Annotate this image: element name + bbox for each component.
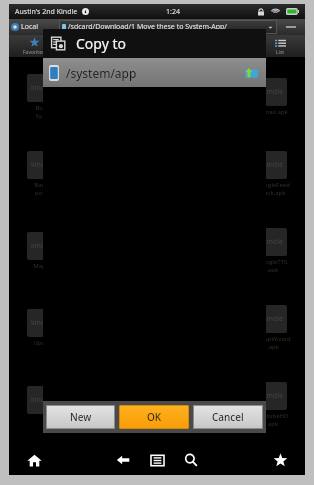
button[interactable]: kindle: [244, 59, 302, 135]
staticText: Copy to: [76, 34, 126, 53]
staticText: kindle: [31, 318, 51, 328]
button[interactable]: Back: [111, 448, 135, 472]
staticText: Maps: [33, 262, 49, 270]
button[interactable]: Minimize: [279, 21, 303, 33]
staticText: Cancel: [212, 410, 244, 424]
button[interactable]: Select: [59, 35, 109, 57]
button[interactable]: kindle: [12, 366, 70, 443]
button[interactable]: Favorites: [9, 35, 59, 57]
button[interactable]: kindle: [244, 212, 302, 289]
button[interactable]: Up one level: [240, 63, 260, 83]
staticText: kindle: [263, 160, 283, 170]
button[interactable]: kindle: [244, 366, 302, 443]
staticText: kindle: [205, 83, 225, 93]
button[interactable]: kindle: [12, 135, 70, 212]
staticText: kindle: [31, 241, 51, 251]
staticText: GoogleFeed back.apk: [256, 181, 290, 197]
staticText: Back po…: [34, 181, 48, 197]
staticText: VoiceSearch .apk: [198, 412, 232, 428]
button[interactable]: kindle: [70, 59, 128, 135]
staticText: Gmail.apk: [259, 108, 288, 116]
button[interactable]: kindle: [186, 59, 244, 135]
staticText: kindle: [31, 83, 51, 93]
staticText: UniversalSe arch.apk: [140, 412, 174, 428]
staticText: Upda: [33, 339, 49, 347]
button[interactable]: Home: [21, 447, 47, 473]
button[interactable]: /sdcard/Download/1 Move these to System-…: [59, 20, 277, 34]
button[interactable]: kindle: [244, 135, 302, 212]
button[interactable]: List: [256, 35, 305, 57]
staticText: Austin's 2nd Kindle: [15, 7, 78, 17]
button[interactable]: New: [46, 405, 115, 429]
button[interactable]: kindle: [186, 366, 244, 443]
staticText: SetupWizard .apk: [255, 335, 291, 351]
button[interactable]: kindle: [128, 366, 186, 443]
staticText: /system/app: [66, 65, 137, 81]
button[interactable]: kindle: [12, 212, 70, 289]
staticText: kindle: [263, 87, 283, 97]
staticText: kindle: [89, 395, 109, 405]
staticText: kindle: [31, 395, 51, 405]
button[interactable]: Local: [11, 19, 59, 35]
staticText: YoutubeHD. apk: [256, 412, 290, 428]
staticText: New: [70, 410, 92, 424]
button[interactable]: Cancel: [193, 405, 263, 429]
staticText: kindle: [89, 83, 109, 93]
button[interactable]: kindle: [128, 59, 186, 135]
staticText: Local: [21, 22, 38, 32]
button[interactable]: /system/app: [49, 58, 260, 87]
button[interactable]: OK: [119, 405, 189, 429]
button[interactable]: kindle: [12, 59, 70, 135]
staticText: Boo Sy…: [35, 104, 47, 120]
staticText: kindle: [263, 391, 283, 401]
button[interactable]: Copy: [109, 35, 158, 57]
button[interactable]: Search: [179, 448, 203, 472]
staticText: kindle: [263, 237, 283, 247]
button[interactable]: kindle: [12, 289, 70, 366]
button[interactable]: Favorites: [267, 447, 293, 473]
button[interactable]: kindle: [70, 366, 128, 443]
staticText: kindle: [147, 83, 167, 93]
staticText: List: [276, 49, 285, 56]
staticText: kindle: [263, 314, 283, 324]
staticText: Term.apk: [86, 416, 113, 424]
staticText: kindle: [31, 160, 51, 170]
button[interactable]: Menu: [145, 448, 169, 472]
button[interactable]: kindle: [244, 289, 302, 366]
